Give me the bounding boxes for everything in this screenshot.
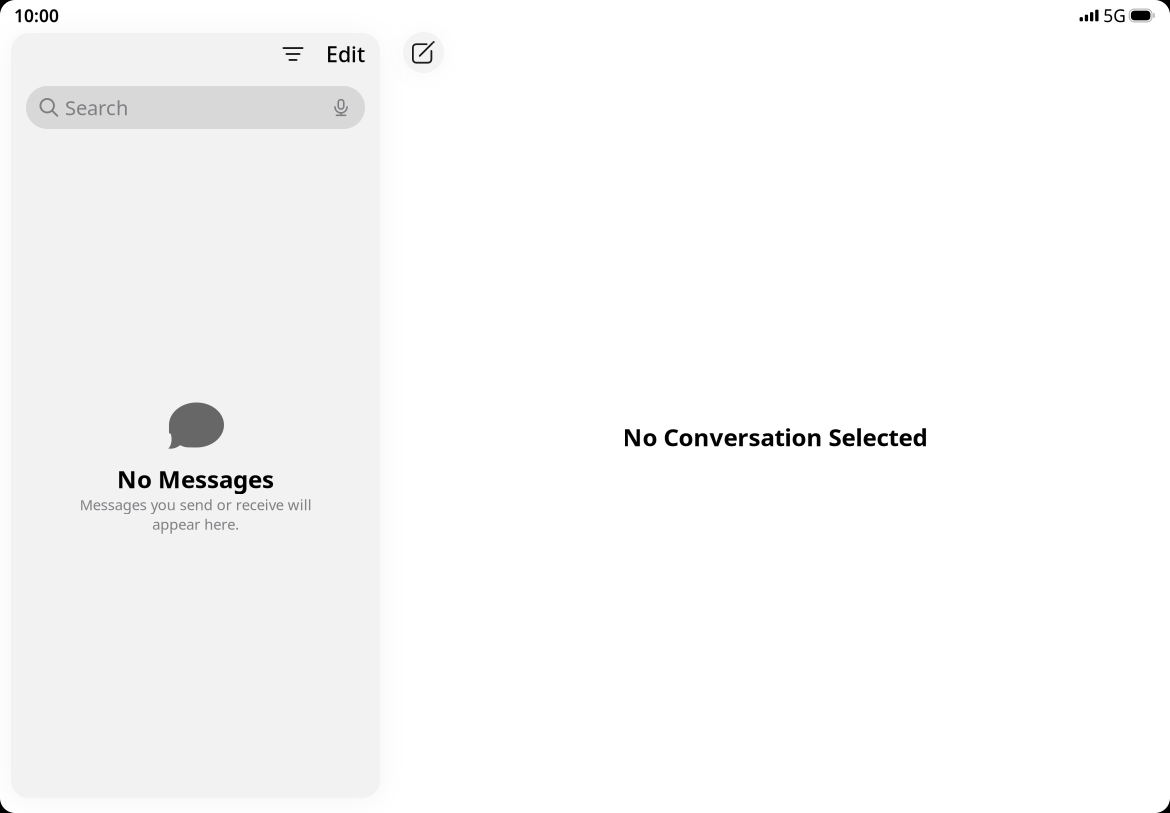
staticText: No Messages <box>117 463 274 495</box>
button[interactable]: Filter Messages <box>271 32 315 76</box>
staticText: Search <box>65 94 128 121</box>
staticText: Edit <box>326 40 365 68</box>
button[interactable]: Search <box>26 86 365 129</box>
staticText: Messages you send or receive will appear… <box>79 495 311 534</box>
staticText: 10:00 <box>14 4 59 27</box>
staticText: No Conversation Selected <box>622 421 927 453</box>
staticText: 5G <box>1103 4 1126 27</box>
button[interactable]: Edit <box>315 32 365 76</box>
button[interactable]: New Message <box>403 32 444 73</box>
